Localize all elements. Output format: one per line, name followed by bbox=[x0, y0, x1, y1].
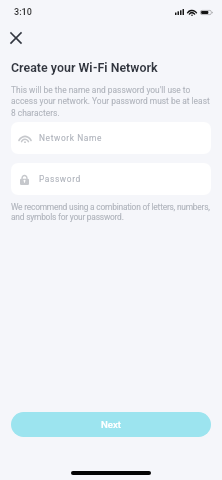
button[interactable]: Network Name bbox=[11, 122, 211, 154]
staticText: We recommend using a combination of lett… bbox=[11, 202, 210, 222]
button[interactable]: Close bbox=[3, 25, 28, 50]
button[interactable]: Next bbox=[11, 412, 211, 437]
staticText: Create your Wi-Fi Network bbox=[11, 60, 158, 75]
button[interactable]: Password bbox=[11, 163, 211, 195]
staticText: 3:10 bbox=[14, 7, 32, 18]
staticText: Password bbox=[39, 174, 81, 184]
staticText: Network Name bbox=[39, 133, 103, 143]
staticText: Next bbox=[101, 419, 121, 430]
staticText: This will be the name and password you'l… bbox=[11, 85, 210, 118]
